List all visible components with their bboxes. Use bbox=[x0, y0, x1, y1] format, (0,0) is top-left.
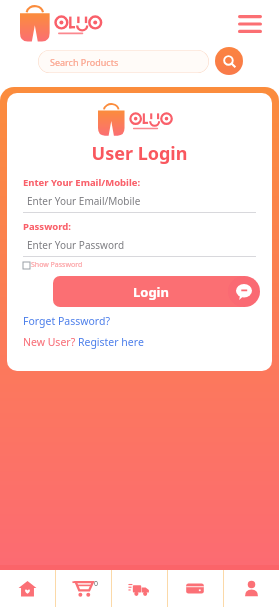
staticText: Search Products bbox=[50, 56, 119, 68]
staticText: Login bbox=[133, 283, 169, 301]
button[interactable]: Login bbox=[53, 276, 248, 307]
staticText: Show Password bbox=[31, 260, 83, 270]
button[interactable]: Enter Your Password bbox=[27, 238, 256, 252]
staticText: User Login bbox=[23, 141, 256, 166]
button[interactable]: Chat support bbox=[228, 276, 260, 307]
staticText: Password: bbox=[23, 220, 71, 233]
button[interactable]: Menu bbox=[235, 11, 265, 37]
button[interactable]: Search Products bbox=[38, 50, 209, 73]
button[interactable]: Home bbox=[0, 570, 55, 607]
button[interactable]: Wallet bbox=[167, 570, 223, 607]
button[interactable]: Cart bbox=[55, 570, 111, 607]
button[interactable]: Enter Your Email/Mobile bbox=[27, 194, 256, 208]
button[interactable]: Search bbox=[215, 47, 243, 75]
staticText: Enter Your Email/Mobile: bbox=[23, 176, 141, 189]
button[interactable]: New User? Register here bbox=[23, 335, 144, 349]
button[interactable]: Orders bbox=[111, 570, 167, 607]
button[interactable]: Forget Password? bbox=[23, 314, 110, 328]
button[interactable]: Profile bbox=[223, 570, 279, 607]
button[interactable]: Show Password bbox=[23, 260, 83, 270]
staticText: 0 bbox=[94, 579, 99, 589]
